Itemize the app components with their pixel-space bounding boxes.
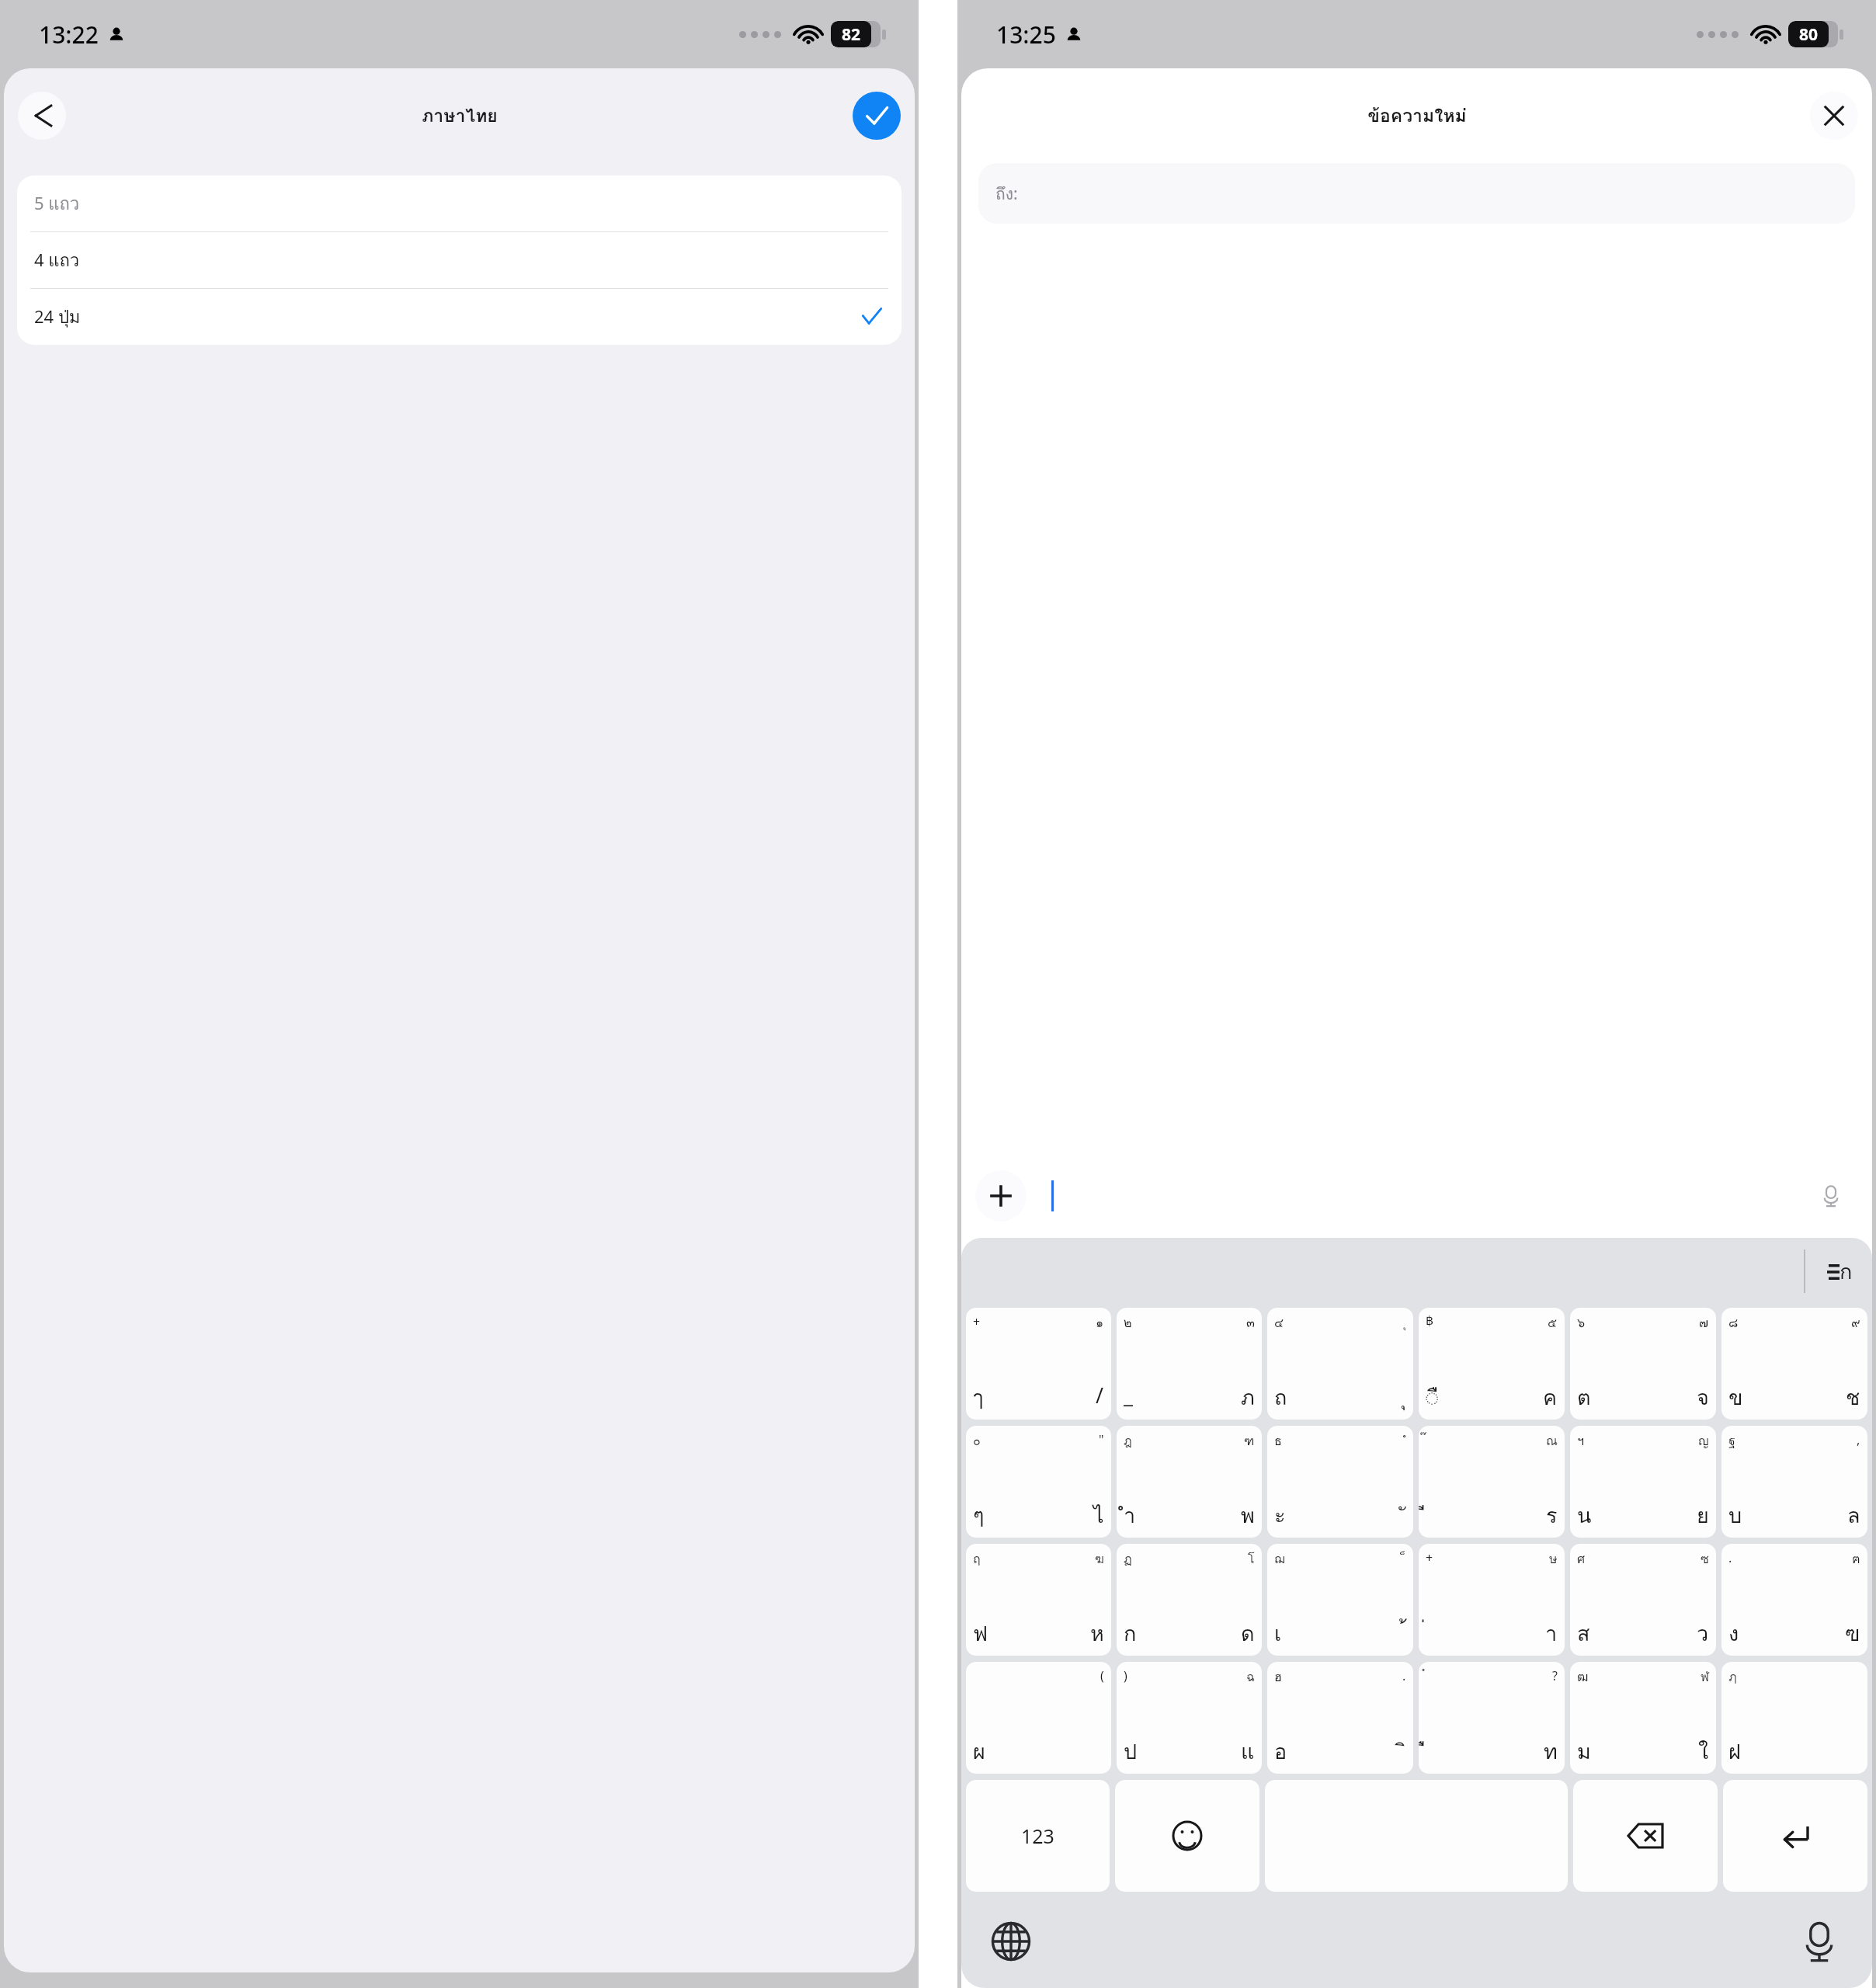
staticText: + xyxy=(973,1313,981,1330)
staticText: ะ xyxy=(1274,1499,1286,1532)
other: Dictate xyxy=(1819,1184,1843,1208)
staticText: ผ xyxy=(973,1735,985,1768)
button[interactable]: Back xyxy=(18,92,66,140)
staticText: ๅ xyxy=(973,1381,984,1414)
button[interactable]: Close xyxy=(1810,92,1858,140)
button[interactable]: ( xyxy=(966,1662,1111,1774)
staticText: น xyxy=(1577,1499,1592,1532)
staticText: ษ xyxy=(1549,1549,1558,1569)
button[interactable]: ศ xyxy=(1570,1544,1716,1656)
staticText: ฯ xyxy=(1577,1431,1584,1451)
button[interactable]: ฿ xyxy=(1419,1308,1565,1420)
staticText: . xyxy=(1728,1549,1732,1566)
staticText: 4 แถว xyxy=(34,247,80,274)
button[interactable]: ๔ xyxy=(1267,1308,1413,1420)
button[interactable]: Change language xyxy=(989,1920,1033,1963)
staticText: ๆ xyxy=(973,1499,985,1532)
button[interactable]: ฮ xyxy=(1267,1662,1413,1774)
staticText: ๕ xyxy=(1548,1313,1558,1333)
staticText: ถึง: xyxy=(995,181,1018,207)
button[interactable]: 4 แถว xyxy=(17,232,902,288)
staticText: _ xyxy=(1124,1381,1133,1409)
staticText: ำ xyxy=(1124,1499,1136,1532)
staticText: ๓ xyxy=(1246,1313,1255,1333)
button[interactable]: Dictate xyxy=(1037,1168,1858,1224)
staticText: ๑ xyxy=(1096,1313,1104,1333)
button[interactable]: Backspace xyxy=(1573,1780,1718,1892)
button[interactable]: ๊ xyxy=(1419,1426,1565,1538)
staticText: ฅ xyxy=(1852,1549,1860,1569)
button[interactable]: ๒ xyxy=(1117,1308,1262,1420)
staticText: ๒ xyxy=(1124,1313,1132,1333)
staticText: า xyxy=(1545,1617,1558,1650)
button[interactable]: . xyxy=(1721,1544,1867,1656)
button[interactable]: ฎ xyxy=(1117,1426,1262,1538)
staticText: " xyxy=(1099,1431,1104,1448)
staticText: อ xyxy=(1274,1735,1287,1768)
staticText: 24 ปุ่ม xyxy=(34,304,81,331)
staticText: ข้อความใหม่ xyxy=(1367,102,1467,130)
staticText: ฆ xyxy=(1095,1549,1104,1569)
button[interactable]: ฏ xyxy=(1117,1544,1262,1656)
staticText: ใ xyxy=(1698,1735,1709,1768)
button[interactable]: Keyboard layout xyxy=(1818,1249,1861,1293)
staticText: ท xyxy=(1544,1735,1558,1768)
staticText: บ xyxy=(1728,1499,1742,1532)
button[interactable]: ๘ xyxy=(1721,1308,1867,1420)
button[interactable]: + xyxy=(966,1308,1111,1420)
button[interactable]: ถึง: xyxy=(978,163,1855,224)
button[interactable]: Return xyxy=(1723,1780,1867,1892)
staticText: แ xyxy=(1241,1735,1255,1768)
staticText: ฮ xyxy=(1274,1667,1282,1687)
staticText: ฃ xyxy=(1845,1617,1860,1650)
staticText: ก xyxy=(1840,1255,1853,1288)
button[interactable]: 123 xyxy=(966,1780,1110,1892)
button[interactable]: ๋ xyxy=(1419,1662,1565,1774)
button[interactable]: ฐ xyxy=(1721,1426,1867,1538)
staticText: ร xyxy=(1546,1499,1558,1532)
button[interactable]: ๖ xyxy=(1570,1308,1716,1420)
staticText: ฬ xyxy=(1701,1667,1709,1687)
staticText: ๔ xyxy=(1274,1313,1284,1333)
staticText: 82 xyxy=(842,23,861,46)
staticText: ค xyxy=(1543,1381,1558,1414)
staticText: ช xyxy=(1846,1381,1860,1414)
staticText: ศ xyxy=(1577,1549,1586,1569)
button[interactable]: Confirm xyxy=(853,92,901,140)
staticText: ? xyxy=(1552,1667,1558,1684)
button[interactable]: ) xyxy=(1117,1662,1262,1774)
button[interactable]: ฦ xyxy=(1721,1662,1867,1774)
staticText: ด xyxy=(1241,1617,1255,1650)
staticText: ฟ xyxy=(973,1617,988,1650)
button[interactable]: ฒ xyxy=(1570,1662,1716,1774)
staticText: 123 xyxy=(1021,1823,1054,1849)
staticText: ฑ xyxy=(1244,1431,1255,1451)
staticText: ล xyxy=(1847,1499,1860,1532)
staticText: ฝ xyxy=(1728,1735,1741,1768)
button[interactable]: ฌ xyxy=(1267,1544,1413,1656)
staticText: ซ xyxy=(1701,1549,1709,1569)
staticText: ฿ xyxy=(1426,1313,1434,1328)
staticText: ง xyxy=(1728,1617,1739,1650)
staticText: ๗ xyxy=(1699,1313,1709,1333)
button[interactable]: 5 แถว xyxy=(17,176,902,231)
button[interactable]: + xyxy=(1419,1544,1565,1656)
button[interactable]: ธ xyxy=(1267,1426,1413,1538)
staticText: ๘ xyxy=(1728,1313,1739,1333)
button[interactable]: Voice input xyxy=(1798,1920,1841,1963)
button[interactable]: Emoji xyxy=(1115,1780,1259,1892)
button[interactable]: ๐ xyxy=(966,1426,1111,1538)
staticText: ก xyxy=(1124,1617,1137,1650)
button[interactable]: Add attachment xyxy=(975,1170,1027,1222)
button[interactable]: ฤ xyxy=(966,1544,1111,1656)
button[interactable]: ฯ xyxy=(1570,1426,1716,1538)
button[interactable]: 24 ปุ่ม xyxy=(17,289,902,345)
staticText: ม xyxy=(1577,1735,1591,1768)
staticText: + xyxy=(1426,1549,1433,1566)
staticText: 13:25 xyxy=(996,19,1056,50)
staticText: ฐ xyxy=(1728,1431,1735,1451)
staticText: ภาษาไทย xyxy=(422,102,498,130)
staticText: ฤ xyxy=(973,1549,981,1569)
staticText: ห xyxy=(1090,1617,1104,1650)
